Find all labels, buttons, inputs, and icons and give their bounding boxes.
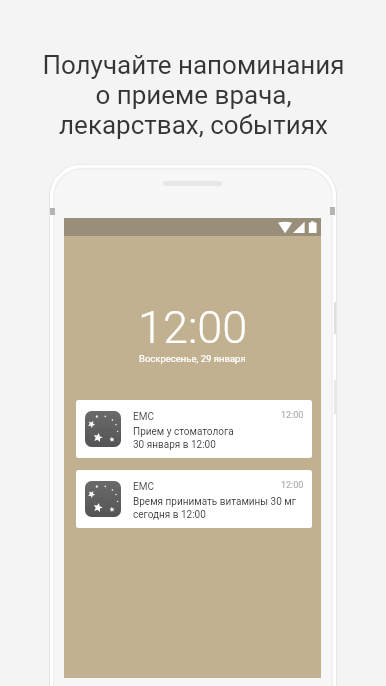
staticText: Получайте напоминания о приеме врача, ле…	[42, 50, 345, 140]
staticText: 30 января в 12:00	[133, 439, 216, 451]
button[interactable]: EMC	[76, 400, 312, 458]
staticText: EMC	[133, 481, 154, 493]
staticText: 12:00	[281, 480, 304, 491]
button[interactable]: EMC	[76, 470, 312, 528]
staticText: 12:00	[138, 301, 248, 354]
staticText: Время принимать витамины 30 мг	[133, 496, 296, 508]
staticText: Прием у стоматолога	[133, 426, 234, 438]
staticText: EMC	[133, 411, 154, 423]
staticText: 12:00	[281, 410, 304, 421]
other: Wi-Fi, signal and battery status	[278, 221, 317, 234]
staticText: Воскресенье, 29 января	[139, 353, 246, 364]
staticText: сегодня в 12:00	[133, 509, 206, 521]
